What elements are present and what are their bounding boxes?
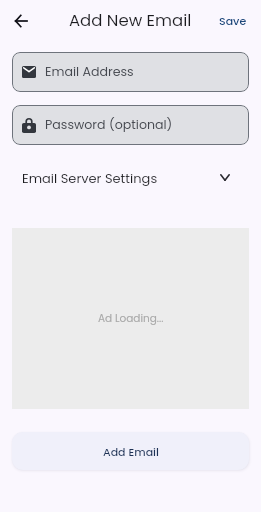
staticText: Email Server Settings xyxy=(22,169,158,187)
staticText: Email Address xyxy=(45,63,134,81)
staticText: Add Email xyxy=(103,444,159,459)
button[interactable]: Email Server Settings xyxy=(0,159,261,196)
staticText: Add New Email xyxy=(69,9,192,32)
staticText: Ad Loading... xyxy=(98,311,164,326)
button[interactable]: Add Email xyxy=(12,432,249,470)
staticText: Save xyxy=(219,13,247,28)
staticText: Password (optional) xyxy=(45,116,173,134)
button[interactable]: Back xyxy=(7,7,35,35)
button[interactable]: Email Address xyxy=(12,52,249,92)
button[interactable]: Password (optional) xyxy=(12,105,249,145)
button[interactable]: Save xyxy=(215,8,251,33)
